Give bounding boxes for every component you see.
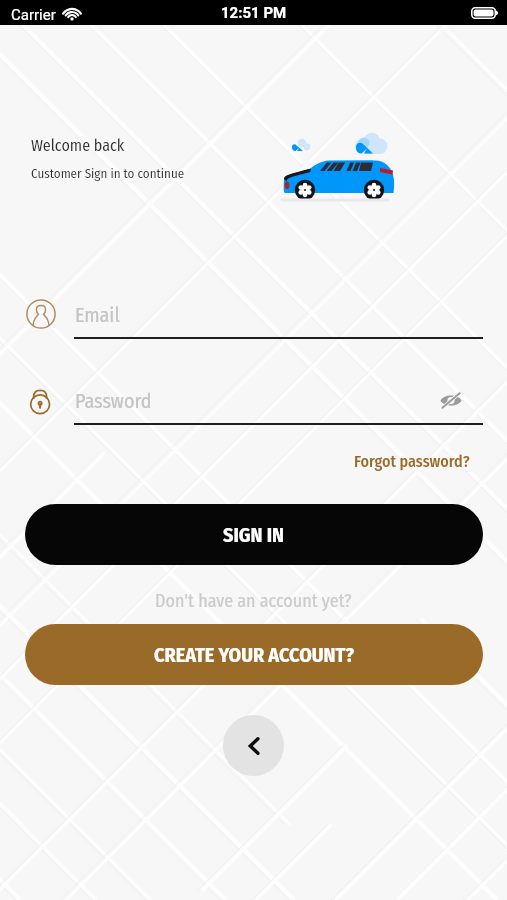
button[interactable] — [26, 384, 56, 414]
button[interactable]: Back — [223, 715, 284, 776]
staticText: Customer Sign in to continue — [31, 166, 185, 182]
button[interactable]: CREATE YOUR ACCOUNT? — [25, 624, 483, 685]
button[interactable] — [26, 299, 56, 329]
staticText: Carrier — [11, 6, 56, 24]
button[interactable]: SIGN IN — [25, 504, 483, 565]
staticText: SIGN IN — [223, 523, 285, 547]
staticText: Don't have an account yet? — [155, 590, 352, 612]
staticText: Email — [75, 303, 120, 327]
button[interactable]: Forgot password? — [354, 452, 470, 471]
staticText: Welcome back — [31, 136, 125, 155]
button[interactable]: Show password — [434, 383, 468, 417]
staticText: Password — [75, 389, 152, 413]
staticText: CREATE YOUR ACCOUNT? — [154, 643, 355, 667]
staticText: 12:51 PM — [221, 4, 287, 22]
staticText: Forgot password? — [354, 452, 470, 471]
